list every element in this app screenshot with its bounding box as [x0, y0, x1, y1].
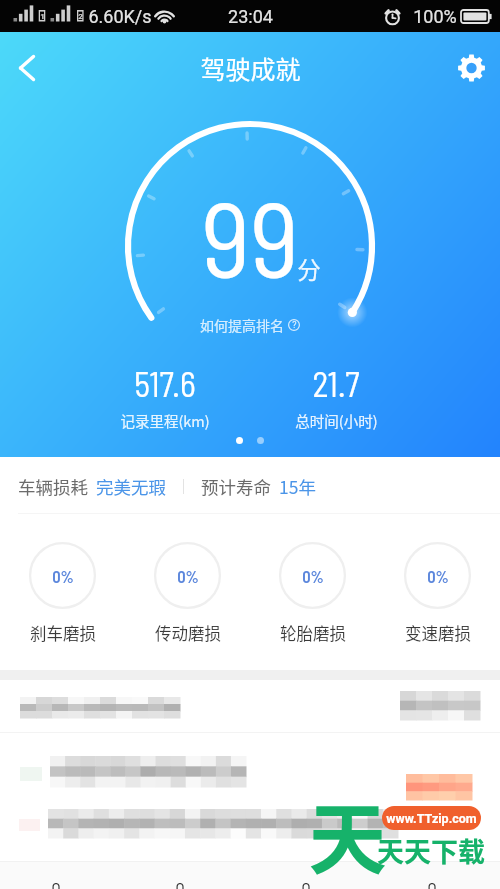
staticText: 驾驶成就	[200, 50, 301, 86]
staticText: 100%	[413, 6, 457, 27]
staticText: 15年	[279, 474, 316, 499]
staticText: 天天下载	[377, 831, 485, 870]
button[interactable]: 车辆损耗	[18, 474, 316, 499]
staticText: 0	[170, 878, 190, 889]
staticText: 0%	[177, 566, 199, 586]
button[interactable]: 如何提高排名	[200, 315, 300, 335]
staticText: 车辆损耗	[18, 474, 88, 499]
staticText: 0%	[427, 566, 449, 586]
staticText: ?	[292, 320, 297, 331]
staticText: 0	[296, 878, 316, 889]
staticText: 517.6	[134, 363, 196, 404]
staticText: 传动磨损	[155, 621, 221, 645]
staticText: 0%	[52, 566, 74, 586]
button[interactable]: Settings	[442, 41, 500, 95]
staticText: 23:04	[228, 6, 273, 27]
staticText: 99	[201, 172, 299, 299]
staticText: 0	[46, 878, 66, 889]
staticText: 2	[78, 12, 83, 21]
staticText: 变速磨损	[405, 621, 471, 645]
staticText: 如何提高排名	[200, 315, 284, 335]
staticText: 分	[297, 252, 321, 286]
staticText: 21.7	[312, 363, 360, 404]
staticText: 0	[422, 878, 442, 889]
staticText: www.TTzip.com	[386, 811, 477, 826]
staticText: 1	[40, 12, 45, 21]
staticText: 6.60K/s	[88, 6, 152, 27]
staticText: 记录里程(km)	[120, 410, 210, 431]
staticText: 预计寿命	[201, 474, 271, 499]
button[interactable]: Back	[0, 41, 54, 95]
button[interactable]: 0%	[375, 542, 500, 645]
staticText: 总时间(小时)	[295, 410, 378, 431]
staticText: 轮胎磨损	[280, 621, 346, 645]
button[interactable]: 0%	[125, 542, 250, 645]
staticText: 刹车磨损	[30, 621, 96, 645]
button[interactable]: 0%	[0, 542, 125, 645]
button[interactable]: 0%	[250, 542, 375, 645]
staticText: 0%	[302, 566, 324, 586]
staticText: 天	[308, 778, 387, 889]
staticText: 完美无瑕	[96, 474, 166, 499]
